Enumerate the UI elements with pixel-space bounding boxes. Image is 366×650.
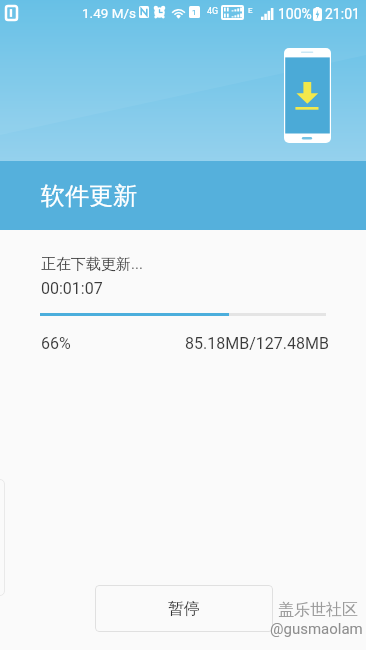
staticText: @gusmaolam <box>270 620 363 638</box>
staticText: 85.18MB/127.48MB <box>185 334 329 353</box>
staticText: 盖乐世社区 <box>278 600 358 620</box>
staticText: 66% <box>41 334 71 353</box>
staticText: E <box>248 6 253 15</box>
staticText: 21:01 <box>325 6 360 22</box>
button[interactable]: 暂停 <box>95 585 273 632</box>
staticText: 100% <box>278 6 312 22</box>
staticText: 软件更新 <box>41 181 137 211</box>
staticText: 00:01:07 <box>41 279 103 298</box>
staticText: 暂停 <box>168 599 200 619</box>
staticText: 1 <box>192 8 197 17</box>
staticText: 1.49 M/s <box>82 5 136 21</box>
staticText: 正在下载更新... <box>41 255 143 274</box>
staticText: 4G <box>207 6 219 17</box>
